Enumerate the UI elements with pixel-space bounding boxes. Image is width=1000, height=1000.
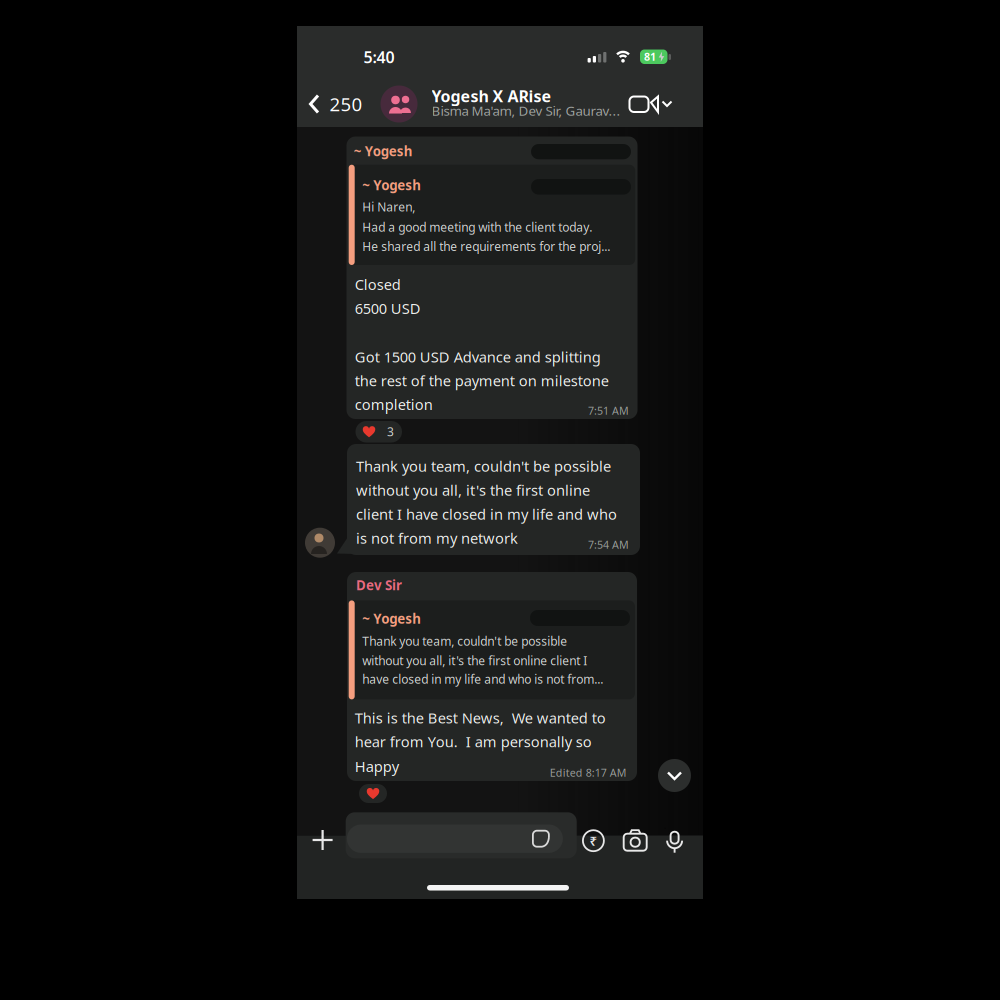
button[interactable]: Voice message bbox=[665, 828, 685, 854]
staticText: ~ Yogesh bbox=[362, 610, 421, 627]
staticText: completion bbox=[355, 395, 433, 414]
staticText: Thank you team, couldn't be possible bbox=[356, 456, 611, 476]
button[interactable]: Video call bbox=[628, 93, 674, 116]
staticText: ₹ bbox=[589, 832, 597, 849]
staticText: Yogesh X ARise bbox=[431, 85, 551, 107]
staticText: 6500 USD bbox=[355, 298, 421, 318]
staticText: Bisma Ma'am, Dev Sir, Gaurav... bbox=[431, 102, 620, 119]
staticText: 7:51 AM bbox=[588, 403, 629, 418]
staticText: without you all, it's the first online bbox=[356, 480, 590, 500]
staticText: client I have closed in my life and who bbox=[356, 504, 617, 524]
staticText: ~ Yogesh bbox=[354, 142, 413, 160]
staticText: Had a good meeting with the client today… bbox=[362, 219, 592, 235]
staticText: 250 bbox=[329, 92, 362, 116]
button[interactable]: Payment bbox=[582, 829, 605, 852]
staticText: is not from my network bbox=[356, 528, 518, 548]
button[interactable]: Reactions bbox=[359, 784, 387, 803]
staticText: ~ Yogesh bbox=[362, 176, 421, 194]
button[interactable]: Back bbox=[304, 92, 366, 116]
staticText: hear from You. I am personally so bbox=[355, 732, 592, 751]
staticText: 5:40 bbox=[363, 46, 394, 68]
button[interactable]: Reactions bbox=[355, 421, 402, 442]
staticText: have closed in my life and who is not fr… bbox=[362, 671, 603, 687]
staticText: He shared all the requirements for the p… bbox=[362, 238, 610, 254]
button[interactable]: Scroll to bottom bbox=[658, 759, 691, 792]
staticText: Edited 8:17 AM bbox=[550, 765, 627, 780]
staticText: Happy bbox=[355, 757, 399, 776]
button[interactable]: Group info bbox=[380, 84, 632, 124]
staticText: Hi Naren, bbox=[362, 199, 415, 215]
staticText: without you all, it's the first online c… bbox=[362, 652, 587, 668]
staticText: the rest of the payment on milestone bbox=[355, 371, 609, 390]
button[interactable]: Message bbox=[347, 824, 563, 853]
staticText: 81 bbox=[644, 50, 656, 64]
staticText: Got 1500 USD Advance and splitting bbox=[355, 347, 601, 367]
staticText: Dev Sir bbox=[356, 576, 402, 594]
staticText: This is the Best News, We wanted to bbox=[355, 708, 606, 727]
staticText: Closed bbox=[355, 275, 401, 294]
staticText: Thank you team, couldn't be possible bbox=[362, 633, 567, 649]
staticText: 3 bbox=[387, 424, 394, 440]
button[interactable]: Camera bbox=[623, 829, 648, 852]
button[interactable]: Attach bbox=[311, 828, 335, 852]
staticText: 7:54 AM bbox=[588, 538, 629, 552]
